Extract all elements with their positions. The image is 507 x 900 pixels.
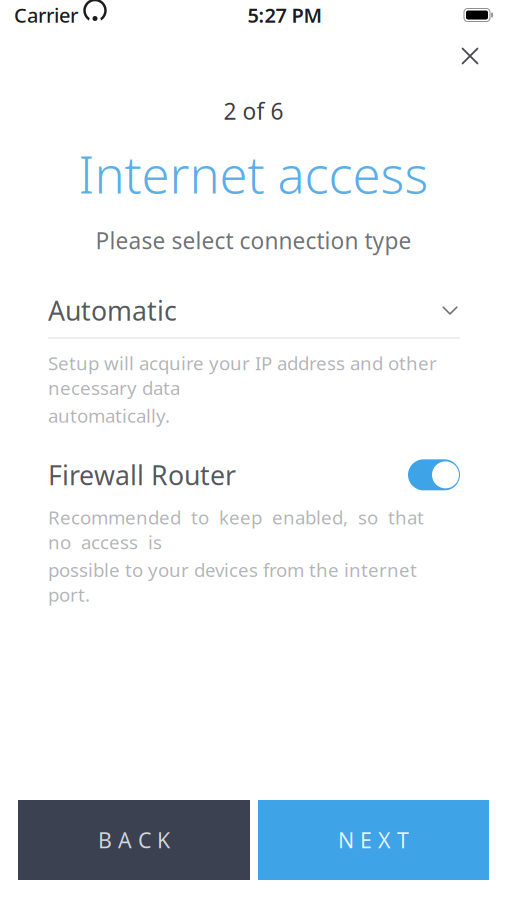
button[interactable]: Automatic <box>0 291 507 338</box>
staticText: Firewall Router <box>48 457 236 493</box>
staticText: 5:27 PM <box>247 2 322 28</box>
staticText: Carrier <box>14 2 78 28</box>
staticText: Automatic <box>48 293 177 328</box>
staticText: B A C K <box>98 826 170 854</box>
button[interactable]: N E X T <box>258 800 489 880</box>
staticText: N E X T <box>338 826 409 854</box>
staticText: 2 of 6 <box>223 96 283 126</box>
staticText: automatically. <box>48 403 170 428</box>
button[interactable]: B A C K <box>18 800 250 880</box>
staticText: Recommended to keep enabled, so that no … <box>48 505 429 554</box>
staticText: Please select connection type <box>95 225 411 255</box>
button[interactable]: Close <box>447 33 493 79</box>
staticText: Internet access <box>78 140 428 207</box>
staticText: Setup will acquire your IP address and o… <box>48 350 437 400</box>
staticText: possible to your devices from the intern… <box>48 557 417 607</box>
button[interactable]: Firewall Router <box>0 455 507 495</box>
